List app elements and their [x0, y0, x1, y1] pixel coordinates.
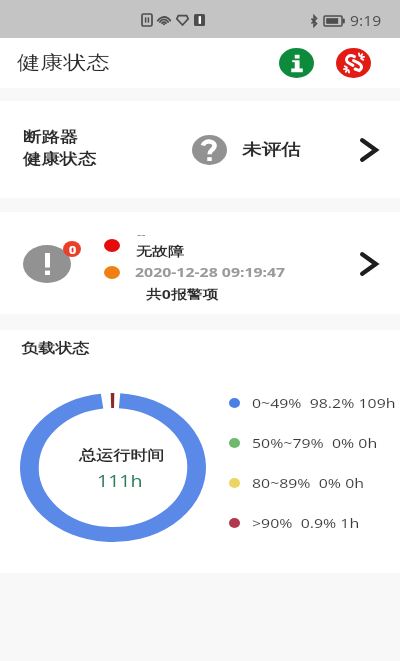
staticText: 0 [69, 242, 77, 257]
staticText: 50%~79% 0% 0h [252, 434, 378, 452]
staticText: 111h [97, 470, 143, 492]
staticText: 2020-12-28 09:19:47 [135, 263, 286, 281]
staticText: 健康状态 [23, 150, 96, 169]
staticText: 健康状态 [17, 51, 110, 75]
staticText: 共0报警项 [146, 285, 219, 303]
button[interactable]: 断路器 [0, 101, 400, 198]
staticText: 无故障 [136, 243, 184, 259]
staticText: >90% 0.9% 1h [252, 514, 359, 532]
button[interactable]: Disconnected [336, 48, 371, 78]
staticText: 未评估 [242, 140, 301, 160]
staticText: 断路器 [23, 128, 78, 147]
staticText: 80~89% 0% 0h [252, 474, 364, 492]
staticText: 总运行时间 [79, 447, 164, 465]
staticText: 0~49% 98.2% 109h [252, 394, 396, 412]
button[interactable]: Info [279, 48, 314, 78]
staticText: 负载状态 [21, 340, 89, 358]
button[interactable]: 0 [0, 212, 400, 314]
staticText: 9:19 [350, 11, 381, 30]
staticText: -- [137, 226, 147, 241]
